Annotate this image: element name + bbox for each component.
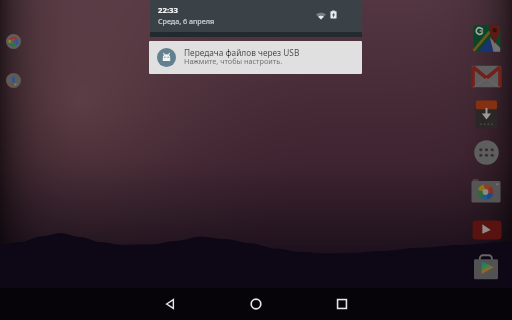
staticText: 22:33 [158,5,179,16]
button[interactable]: Передача файлов через USB [149,41,362,74]
button[interactable]: YouTube [472,220,502,240]
button[interactable]: Google Search [6,34,21,49]
button[interactable]: Camera [471,178,501,203]
button[interactable]: Home [236,288,276,320]
button[interactable]: Gmail [471,64,502,88]
button[interactable]: Play Store [471,252,501,280]
button[interactable]: Apps [474,140,499,165]
button[interactable]: Downloads [475,99,498,130]
button[interactable]: Voice Search [6,73,21,88]
button[interactable]: Back [150,288,190,320]
button[interactable]: Maps [473,25,501,52]
button[interactable]: Recents [322,288,362,320]
staticText: Нажмите, чтобы настроить. [184,56,283,66]
staticText: Среда, 6 апреля [158,16,215,26]
button[interactable]: 22:33 [150,0,362,37]
staticText: Передача файлов через USB [184,47,300,58]
